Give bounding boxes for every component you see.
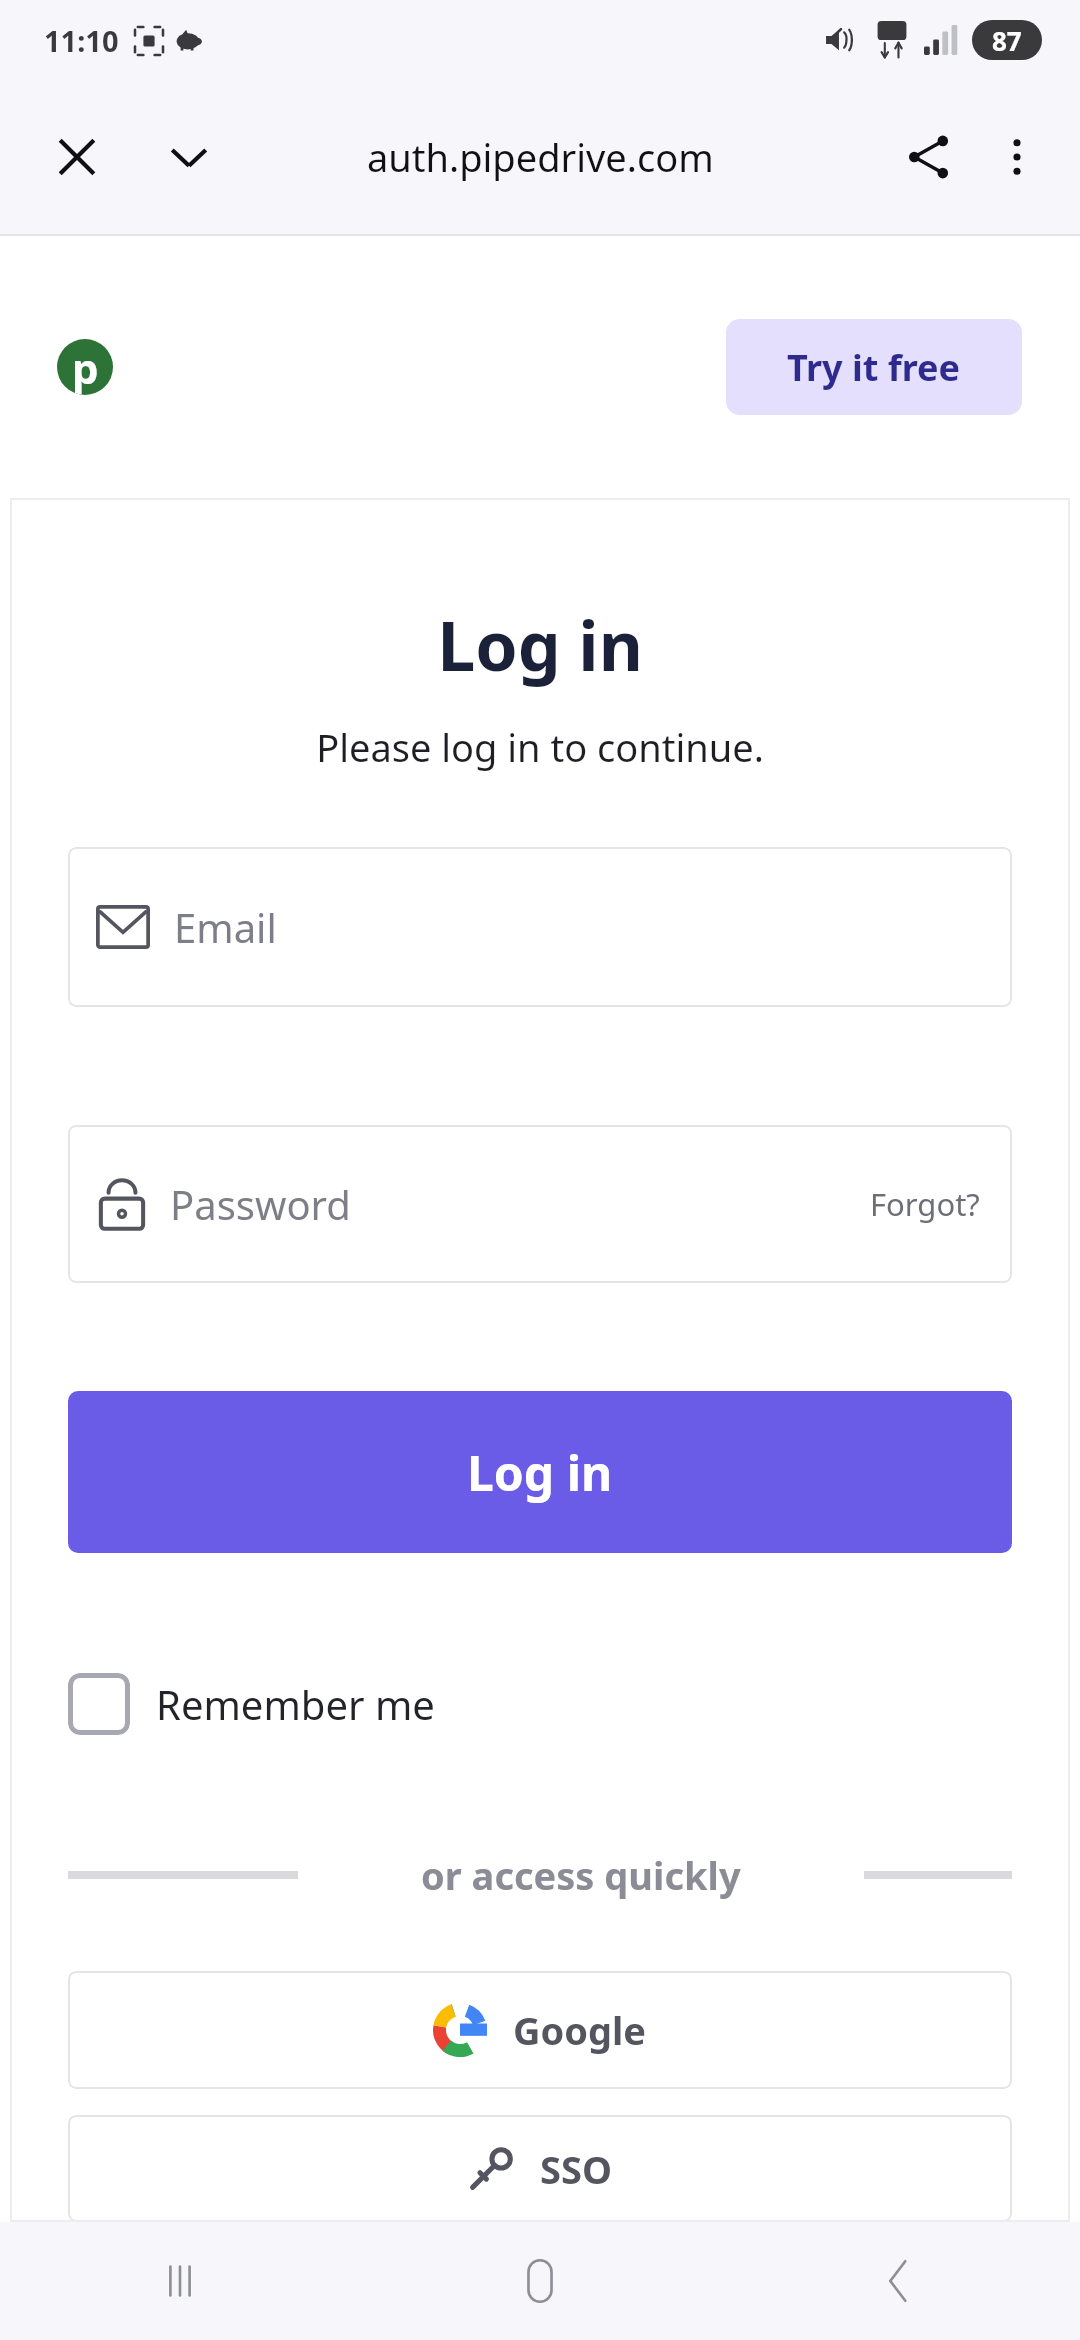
staticText: Please log in to continue. bbox=[68, 721, 1012, 773]
staticText: Log in bbox=[467, 1440, 613, 1505]
button[interactable]: Home bbox=[360, 2222, 720, 2340]
button[interactable]: More options bbox=[976, 116, 1058, 198]
staticText: Email bbox=[174, 900, 277, 954]
button[interactable]: Google bbox=[68, 1971, 1012, 2089]
staticText: Password bbox=[170, 1177, 351, 1231]
button[interactable]: Password bbox=[68, 1125, 1012, 1283]
staticText: Log in bbox=[68, 598, 1012, 691]
button[interactable]: Recent apps bbox=[0, 2222, 360, 2340]
staticText: Forgot? bbox=[870, 1183, 980, 1225]
button[interactable]: Pipedrive home bbox=[57, 339, 113, 395]
button[interactable]: Log in bbox=[68, 1391, 1012, 1553]
button[interactable]: Try it free bbox=[726, 319, 1022, 415]
staticText: or access quickly bbox=[421, 1849, 741, 1901]
staticText: auth.pipedrive.com bbox=[367, 131, 714, 183]
staticText: p bbox=[72, 339, 99, 395]
staticText: 11:10 bbox=[44, 21, 119, 60]
staticText: 87 bbox=[992, 23, 1022, 58]
button[interactable]: Close bbox=[36, 116, 118, 198]
button[interactable]: SSO bbox=[68, 2115, 1012, 2222]
staticText: Remember me bbox=[156, 1677, 435, 1731]
button[interactable]: Remember me bbox=[68, 1669, 435, 1739]
staticText: Try it free bbox=[787, 343, 961, 392]
button[interactable]: Show more bbox=[148, 116, 230, 198]
button[interactable]: Email bbox=[68, 847, 1012, 1007]
button[interactable]: Forgot? bbox=[866, 1177, 984, 1231]
staticText: SSO bbox=[540, 2143, 612, 2195]
button[interactable]: Back bbox=[720, 2222, 1080, 2340]
button[interactable]: Share bbox=[888, 116, 970, 198]
staticText: Google bbox=[513, 2004, 647, 2056]
